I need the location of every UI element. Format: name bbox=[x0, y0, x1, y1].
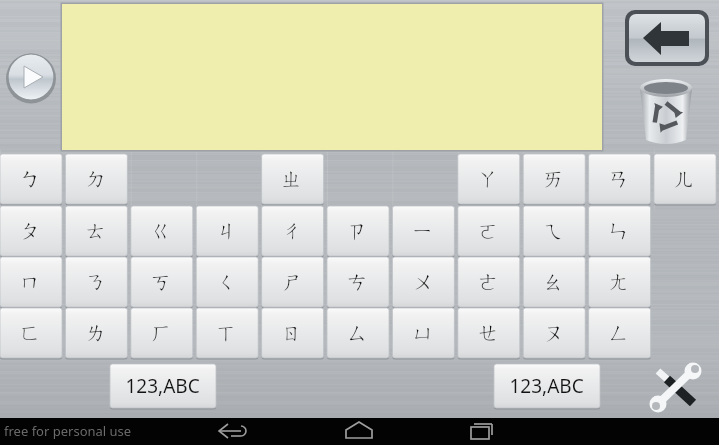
button[interactable]: 123,ABC bbox=[110, 364, 216, 408]
button[interactable]: Home bbox=[331, 418, 386, 445]
button[interactable]: ㄝ bbox=[458, 308, 520, 358]
button[interactable]: ㄢ bbox=[589, 154, 651, 204]
button[interactable]: ㄣ bbox=[589, 206, 651, 256]
button[interactable]: ㄨ bbox=[392, 257, 454, 307]
button[interactable]: ㄘ bbox=[327, 257, 389, 307]
button[interactable]: ㄦ bbox=[654, 154, 716, 204]
button[interactable]: Recents bbox=[457, 418, 512, 445]
button[interactable]: ㄎ bbox=[131, 257, 193, 307]
button[interactable]: ㄋ bbox=[65, 257, 127, 307]
button[interactable]: ㄐ bbox=[196, 206, 258, 256]
button[interactable]: Delete bbox=[636, 82, 696, 148]
button[interactable]: ㄛ bbox=[458, 206, 520, 256]
button[interactable]: ㄖ bbox=[262, 308, 324, 358]
button[interactable]: ㄜ bbox=[458, 257, 520, 307]
button[interactable]: ㄒ bbox=[196, 308, 258, 358]
button[interactable]: Play bbox=[8, 54, 54, 100]
button[interactable]: ㄉ bbox=[65, 154, 127, 204]
button[interactable]: ㄗ bbox=[327, 206, 389, 256]
button[interactable]: ㄩ bbox=[392, 308, 454, 358]
button[interactable]: ㄍ bbox=[131, 206, 193, 256]
button[interactable]: ㄞ bbox=[523, 154, 585, 204]
button[interactable]: ㄈ bbox=[0, 308, 62, 358]
button[interactable]: ㄚ bbox=[458, 154, 520, 204]
button[interactable]: ㄇ bbox=[0, 257, 62, 307]
button[interactable]: ㄑ bbox=[196, 257, 258, 307]
button[interactable]: ㄅ bbox=[0, 154, 62, 204]
button[interactable]: ㄕ bbox=[262, 257, 324, 307]
button[interactable]: ㄟ bbox=[523, 206, 585, 256]
button[interactable]: ㄊ bbox=[65, 206, 127, 256]
button[interactable]: ㄆ bbox=[0, 206, 62, 256]
button[interactable]: ㄏ bbox=[131, 308, 193, 358]
button[interactable]: ㄙ bbox=[327, 308, 389, 358]
button[interactable]: 123,ABC bbox=[494, 364, 600, 408]
button[interactable]: ㄧ bbox=[392, 206, 454, 256]
button[interactable]: ㄠ bbox=[523, 257, 585, 307]
button[interactable]: ㄔ bbox=[262, 206, 324, 256]
button[interactable]: ㄡ bbox=[523, 308, 585, 358]
button[interactable]: ㄓ bbox=[262, 154, 324, 204]
button[interactable]: ㄤ bbox=[589, 257, 651, 307]
button[interactable]: ㄌ bbox=[65, 308, 127, 358]
button[interactable]: Back bbox=[205, 418, 260, 445]
button[interactable]: Backspace bbox=[625, 10, 709, 66]
button[interactable]: ㄥ bbox=[589, 308, 651, 358]
button[interactable]: Settings bbox=[644, 362, 708, 414]
